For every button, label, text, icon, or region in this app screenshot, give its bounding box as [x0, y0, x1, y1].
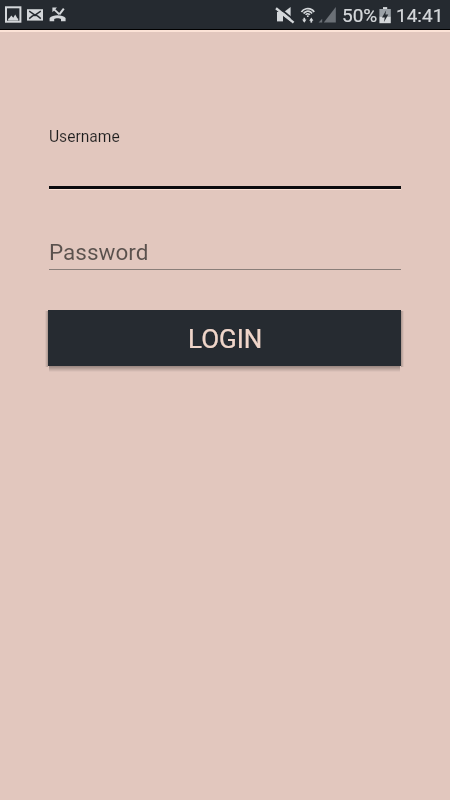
staticText: 50% [342, 4, 378, 26]
button[interactable]: Password [49, 233, 401, 271]
staticText: 14:41 [396, 4, 444, 26]
other: Status bar [0, 0, 450, 29]
button[interactable]: LOGIN [48, 310, 401, 366]
staticText: Password [49, 239, 149, 265]
staticText: LOGIN [188, 324, 263, 354]
button[interactable]: Username [49, 110, 401, 190]
staticText: Username [49, 128, 120, 146]
